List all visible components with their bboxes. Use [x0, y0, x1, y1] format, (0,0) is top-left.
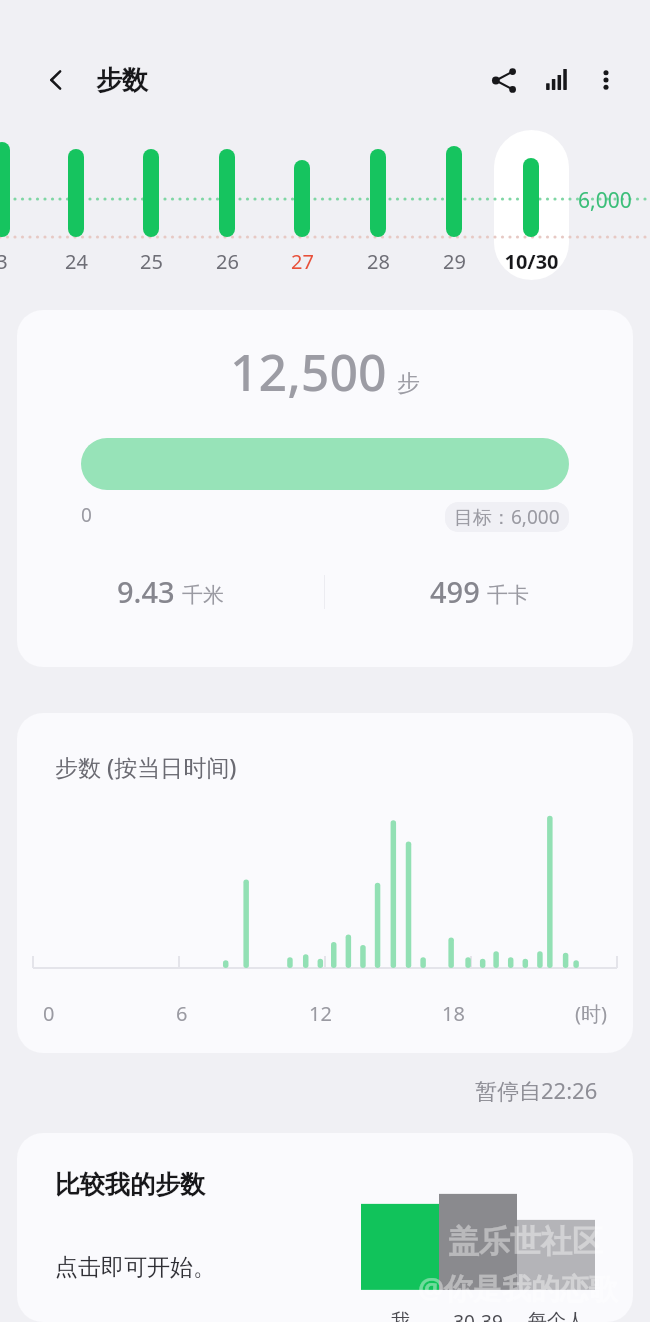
- staticText: 我: [391, 1309, 410, 1322]
- button[interactable]: 26: [187, 248, 267, 275]
- button[interactable]: 12,500: [17, 310, 633, 667]
- button[interactable]: Trends: [530, 54, 582, 106]
- staticText: 步数 (按当日时间): [55, 751, 237, 782]
- staticText: 暂停自22:26: [475, 1075, 598, 1105]
- staticText: 6: [176, 1000, 188, 1027]
- staticText: 18: [442, 1000, 465, 1027]
- staticText: 比较我的步数: [55, 1169, 205, 1200]
- button[interactable]: 25: [111, 248, 191, 275]
- staticText: 千米: [182, 582, 224, 608]
- staticText: 499: [430, 572, 480, 611]
- staticText: 12,500: [230, 338, 387, 406]
- button[interactable]: 29: [414, 248, 494, 275]
- staticText: 24: [65, 248, 88, 275]
- staticText: 12: [309, 1000, 332, 1027]
- button[interactable]: Share: [478, 54, 530, 106]
- button[interactable]: 10/30: [491, 248, 571, 275]
- button[interactable]: 3: [0, 248, 42, 275]
- button[interactable]: 24: [36, 248, 116, 275]
- staticText: 6,000: [578, 186, 632, 215]
- staticText: 26: [216, 248, 239, 275]
- staticText: 30-39: [453, 1309, 503, 1322]
- button[interactable]: 步数 (按当日时间): [17, 713, 633, 1053]
- staticText: 千卡: [487, 582, 529, 608]
- staticText: 点击即可开始。: [55, 1253, 216, 1282]
- staticText: 步: [397, 369, 420, 398]
- staticText: 目标：6,000: [454, 504, 560, 530]
- staticText: 步数: [96, 64, 148, 97]
- staticText: 25: [140, 248, 163, 275]
- staticText: @你是我的恋歌: [418, 1268, 619, 1308]
- staticText: 10/30: [504, 248, 559, 275]
- staticText: 27: [291, 248, 314, 275]
- button[interactable]: 比较我的步数: [17, 1133, 633, 1322]
- staticText: 0: [43, 1000, 55, 1027]
- staticText: 盖乐世社区: [448, 1222, 603, 1261]
- button[interactable]: 28: [338, 248, 418, 275]
- button[interactable]: 27: [262, 248, 342, 275]
- staticText: 每个人: [528, 1309, 585, 1322]
- staticText: 9.43: [117, 572, 175, 611]
- button[interactable]: More options: [582, 56, 630, 104]
- staticText: 0: [81, 502, 92, 528]
- staticText: 29: [443, 248, 466, 275]
- button[interactable]: Back: [34, 58, 78, 102]
- staticText: 3: [0, 248, 8, 275]
- staticText: (时): [575, 1000, 607, 1027]
- staticText: 28: [367, 248, 390, 275]
